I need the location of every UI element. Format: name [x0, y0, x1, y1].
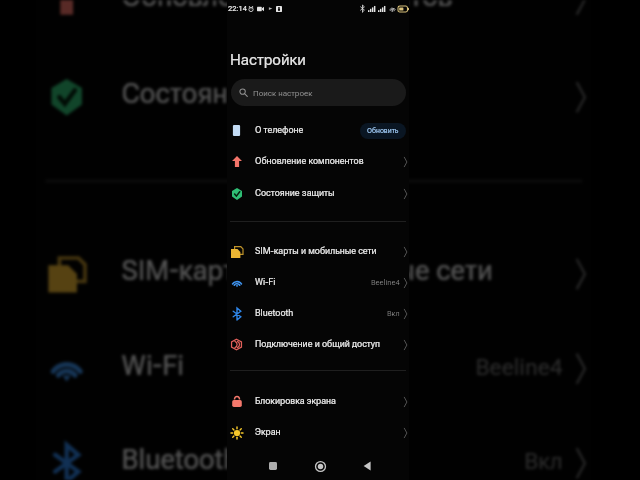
button[interactable]: Recents — [264, 457, 282, 475]
staticText: О телефоне — [255, 125, 304, 136]
staticText: Beeline4 — [475, 353, 564, 381]
staticText: Обновление компонентов — [255, 156, 364, 167]
button[interactable]: Wi-Fi — [36, 320, 591, 414]
staticText: Состояние защиты — [255, 188, 335, 199]
staticText: Подключение и общий доступ — [255, 339, 380, 350]
button[interactable]: Поиск настроек — [231, 79, 406, 106]
button[interactable]: Обновление компонентов — [227, 146, 409, 177]
button[interactable]: SIM-карты и мобильные сети — [227, 236, 409, 267]
staticText: Обновить — [367, 127, 399, 135]
button[interactable]: Back — [358, 457, 376, 475]
staticText: 22:14 — [228, 4, 247, 13]
button[interactable]: Блокировка экрана — [227, 386, 409, 417]
staticText: Блокировка экрана — [255, 396, 336, 407]
staticText: Экран — [255, 427, 281, 438]
staticText: Состояние защиты — [122, 79, 366, 112]
button[interactable]: Bluetooth — [227, 298, 409, 329]
button[interactable]: Состояние защиты — [36, 48, 591, 143]
staticText: SIM-карты и мобильные сети — [255, 246, 377, 257]
button[interactable]: Состояние защиты — [227, 178, 409, 209]
button[interactable]: Обновить — [360, 123, 406, 139]
staticText: Wi-Fi — [122, 350, 186, 384]
staticText: Вкл — [387, 309, 400, 318]
staticText: Bluetooth — [122, 445, 240, 478]
button[interactable]: SIM-карты и мобильные сети — [36, 225, 591, 320]
button[interactable]: Bluetooth — [36, 414, 591, 480]
staticText: Настройки — [230, 51, 306, 69]
staticText: Beeline4 — [371, 278, 400, 287]
button[interactable]: О телефоне — [227, 115, 409, 146]
staticText: Bluetooth — [255, 308, 294, 319]
button[interactable]: Подключение и общий доступ — [227, 329, 409, 360]
staticText: Обновление компонентов — [122, 0, 454, 15]
staticText: Вкл — [524, 448, 564, 475]
staticText: SIM-карты и мобильные сети — [122, 256, 494, 289]
button[interactable]: Home — [311, 457, 329, 475]
staticText: Поиск настроек — [253, 88, 313, 97]
staticText: Wi-Fi — [255, 277, 276, 288]
button[interactable]: Wi-Fi — [227, 267, 409, 298]
button[interactable]: Экран — [227, 417, 409, 448]
button[interactable]: Обновление компонентов — [36, 0, 591, 45]
